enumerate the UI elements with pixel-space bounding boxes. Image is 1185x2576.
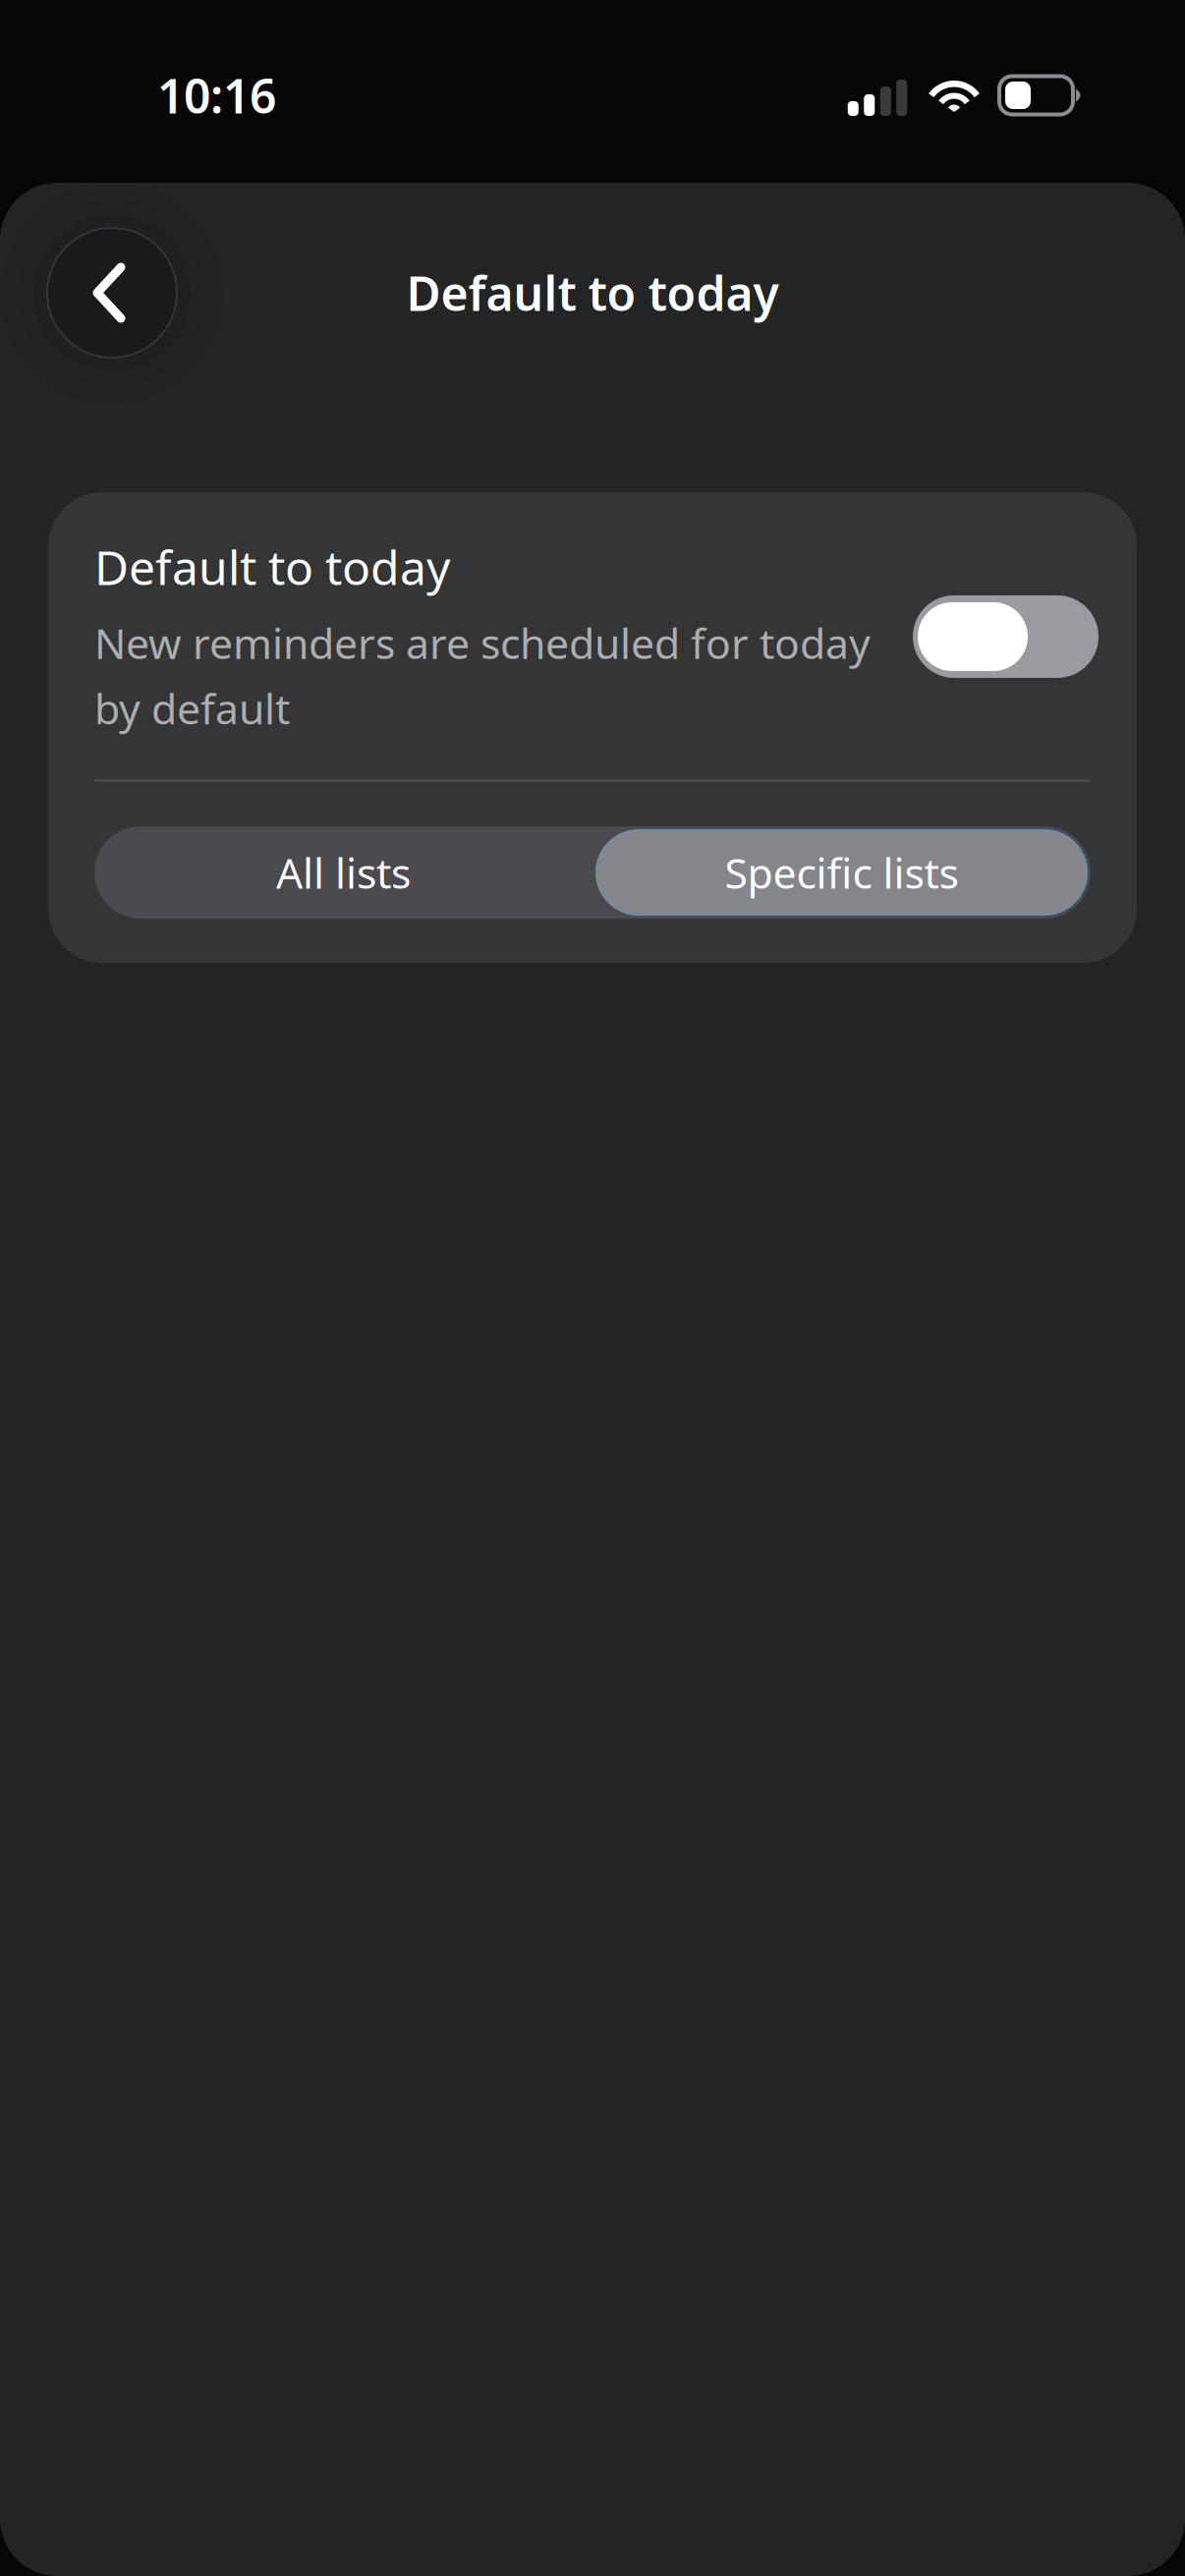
staticText: Default to today <box>406 261 779 324</box>
button[interactable]: Back <box>47 228 177 358</box>
button[interactable]: Specific lists <box>592 826 1091 919</box>
staticText: by default <box>94 680 290 736</box>
staticText: Specific lists <box>725 845 959 900</box>
staticText: 10:16 <box>157 64 276 127</box>
staticText: New reminders are scheduled for today <box>94 615 871 670</box>
staticText: All lists <box>276 845 411 900</box>
button[interactable]: All lists <box>94 826 592 919</box>
button[interactable]: Default to today <box>913 595 1099 678</box>
staticText: Default to today <box>94 535 450 598</box>
